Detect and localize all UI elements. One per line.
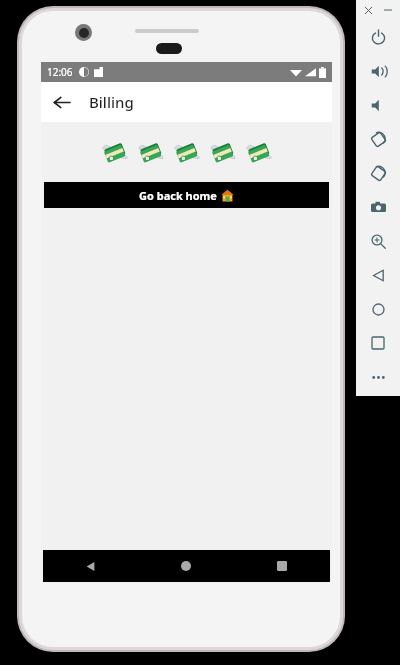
button[interactable]: More xyxy=(356,360,400,394)
button[interactable]: Close xyxy=(361,3,375,17)
button[interactable]: Back xyxy=(43,550,138,582)
button[interactable]: Power xyxy=(356,20,400,54)
button[interactable]: Home xyxy=(356,292,400,326)
button[interactable]: Screenshot xyxy=(356,190,400,224)
button[interactable]: Zoom xyxy=(356,224,400,258)
staticText: Billing xyxy=(89,92,134,112)
button[interactable]: Overview xyxy=(356,326,400,360)
button[interactable]: Go back home xyxy=(44,182,329,208)
button[interactable]: Back xyxy=(41,82,81,122)
button[interactable]: Minimize xyxy=(381,3,395,17)
button[interactable]: Volume down xyxy=(356,88,400,122)
staticText: Go back home xyxy=(139,188,217,203)
staticText: 12:06 xyxy=(47,65,73,79)
button[interactable]: Volume up xyxy=(356,54,400,88)
button[interactable]: Home xyxy=(138,550,234,582)
button[interactable]: Recent apps xyxy=(234,550,330,582)
button[interactable]: Rotate left xyxy=(356,122,400,156)
button[interactable]: Rotate right xyxy=(356,156,400,190)
button[interactable]: Back xyxy=(356,258,400,292)
